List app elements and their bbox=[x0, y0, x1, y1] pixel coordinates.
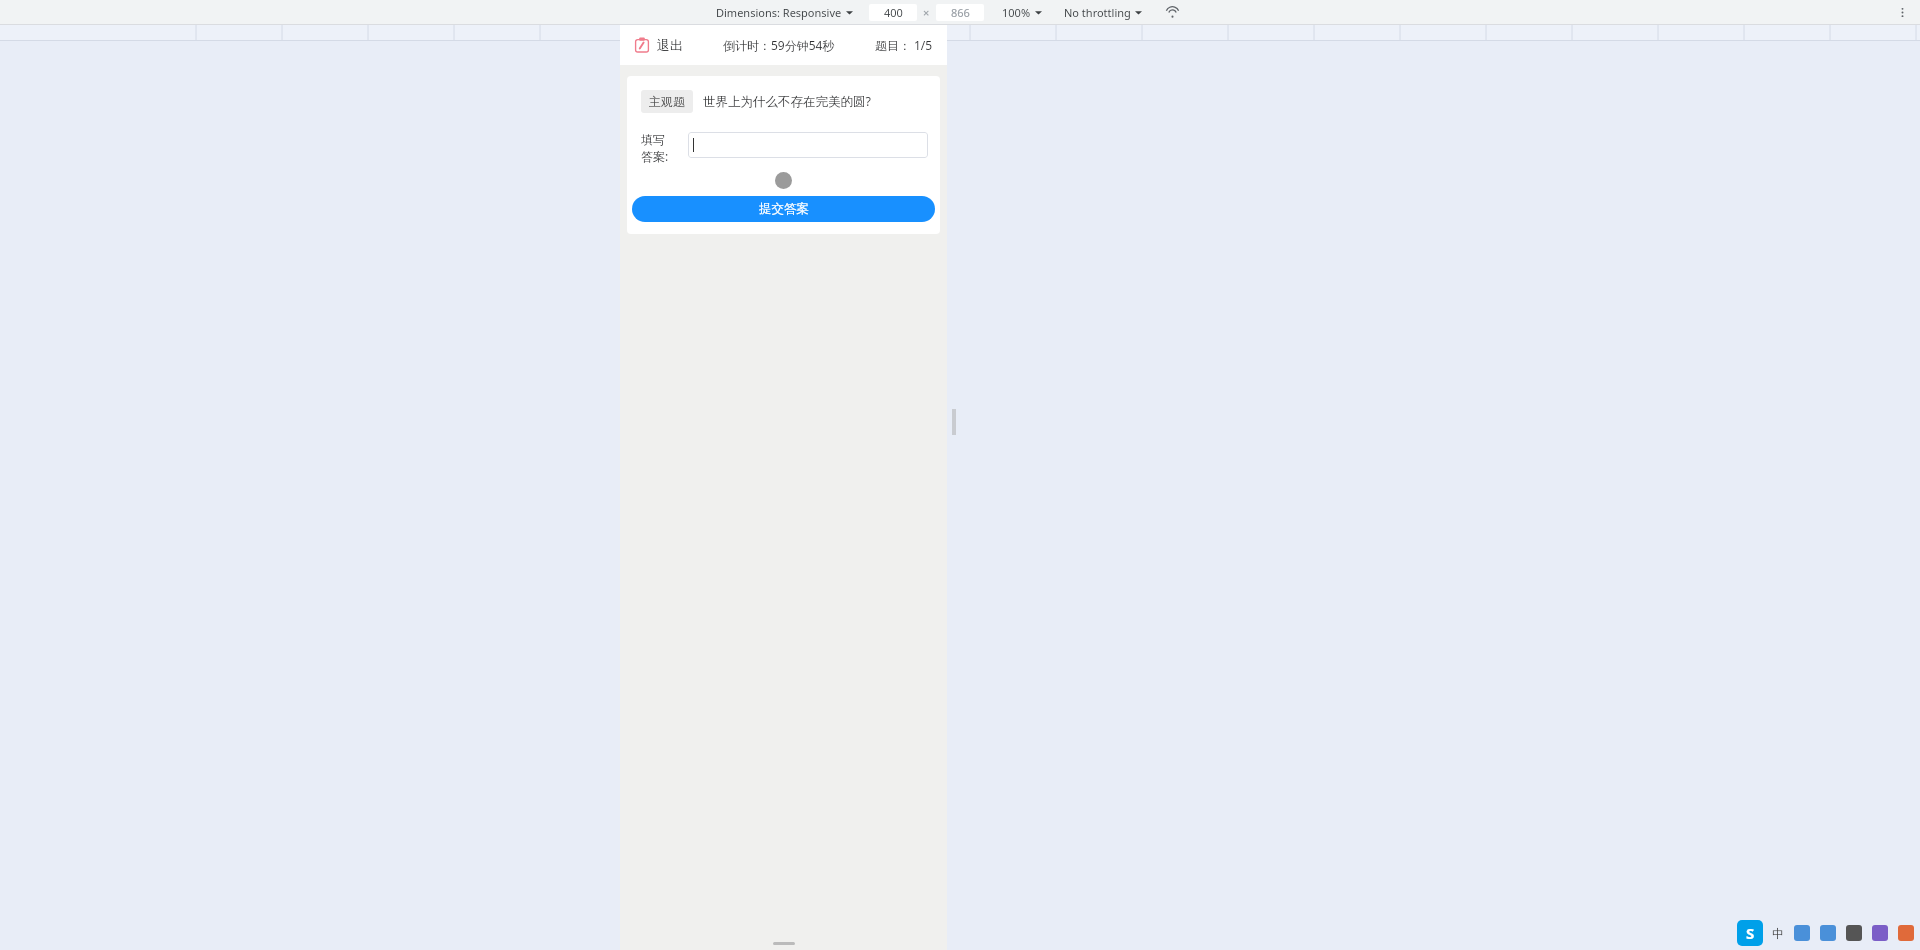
button[interactable]: No throttling bbox=[1060, 5, 1146, 20]
button[interactable]: Toggle network conditions bbox=[1162, 2, 1182, 22]
staticText: 100% bbox=[1002, 5, 1031, 20]
button[interactable]: 退出 bbox=[634, 37, 683, 53]
staticText: 400 bbox=[884, 5, 903, 20]
staticText: 提交答案 bbox=[759, 201, 809, 217]
button[interactable]: More options bbox=[1894, 2, 1910, 22]
staticText: 填写答案: bbox=[641, 132, 675, 164]
button[interactable] bbox=[688, 132, 928, 158]
staticText: S bbox=[1746, 923, 1755, 943]
staticText: 中 bbox=[1772, 926, 1784, 941]
staticText: 世界上为什么不存在完美的圆? bbox=[703, 93, 871, 110]
button[interactable]: Sogou input bbox=[1737, 920, 1763, 946]
button[interactable]: Tray icon bbox=[1898, 925, 1914, 941]
button[interactable]: Tray icon bbox=[1820, 925, 1836, 941]
staticText: 退出 bbox=[657, 37, 683, 53]
button[interactable]: 866 bbox=[936, 4, 984, 21]
staticText: 主观题 bbox=[649, 94, 685, 109]
button[interactable]: Tray icon bbox=[1794, 925, 1810, 941]
button[interactable]: Tray icon bbox=[1872, 925, 1888, 941]
button[interactable]: Dimensions: Responsive bbox=[712, 5, 857, 20]
button[interactable]: 100% bbox=[998, 5, 1046, 20]
button[interactable]: Tray icon bbox=[1846, 925, 1862, 941]
staticText: 倒计时：59分钟54秒 bbox=[723, 37, 835, 53]
staticText: 866 bbox=[951, 5, 970, 20]
button[interactable]: 400 bbox=[869, 4, 917, 21]
staticText: Dimensions: Responsive bbox=[716, 5, 842, 20]
staticText: 1/5 bbox=[914, 37, 933, 53]
staticText: No throttling bbox=[1064, 5, 1131, 20]
staticText: × bbox=[923, 5, 930, 20]
button[interactable]: 提交答案 bbox=[632, 196, 935, 222]
staticText: 题目： bbox=[875, 38, 911, 53]
